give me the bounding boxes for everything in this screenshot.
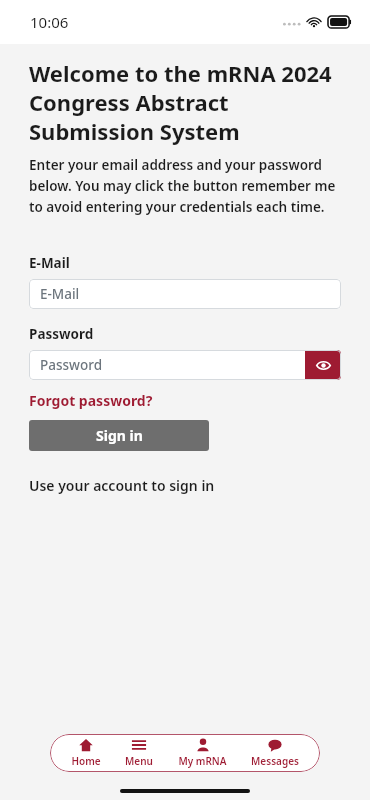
staticText: Home: [71, 754, 101, 768]
button[interactable]: E-Mail: [29, 279, 341, 309]
staticText: Sign in: [96, 426, 143, 445]
button[interactable]: Menu: [121, 738, 157, 768]
staticText: Use your account to sign in: [29, 476, 215, 495]
staticText: Password: [29, 325, 94, 343]
button[interactable]: Password: [29, 356, 305, 374]
button[interactable]: Show password: [305, 350, 341, 380]
staticText: E-Mail: [29, 254, 70, 272]
staticText: Enter your email address and your passwo…: [29, 156, 341, 216]
staticText: Forgot password?: [29, 391, 153, 410]
staticText: Menu: [125, 754, 153, 768]
button[interactable]: Forgot password?: [29, 391, 153, 410]
staticText: Messages: [251, 754, 299, 768]
button[interactable]: Home: [67, 738, 105, 768]
staticText: Welcome to the mRNA 2024 Congress Abstra…: [29, 58, 341, 146]
staticText: Password: [40, 356, 103, 374]
staticText: E-Mail: [40, 285, 80, 303]
button[interactable]: My mRNA: [174, 738, 231, 768]
button[interactable]: Messages: [247, 738, 303, 768]
staticText: 10:06: [30, 12, 69, 32]
staticText: My mRNA: [178, 754, 227, 768]
button[interactable]: Sign in: [29, 420, 209, 451]
